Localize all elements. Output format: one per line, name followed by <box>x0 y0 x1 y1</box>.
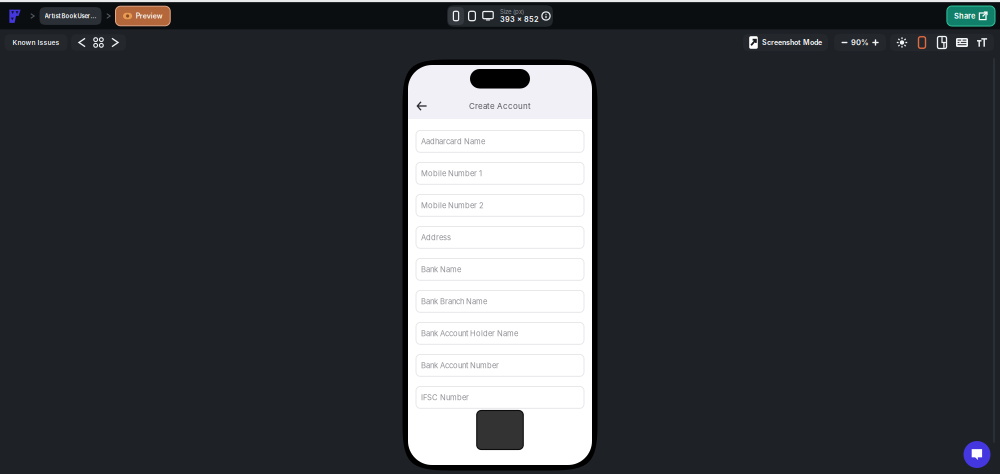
staticText: Address <box>421 233 451 242</box>
staticText: Size (px) <box>500 8 524 16</box>
button[interactable]: Zoom in <box>869 35 882 50</box>
staticText: Known Issues <box>12 38 59 47</box>
button[interactable]: Submit <box>477 410 523 449</box>
button[interactable]: Chat support <box>963 441 990 468</box>
staticText: IFSC Number <box>421 393 469 402</box>
staticText: Bank Name <box>421 265 461 274</box>
staticText: Share <box>954 11 975 20</box>
staticText: 393 × 852 <box>500 15 539 24</box>
button[interactable]: Zoom out <box>838 35 851 50</box>
button[interactable]: Next screen <box>107 35 123 50</box>
button[interactable]: Screenshot Mode <box>743 34 828 51</box>
button[interactable]: Aadharcard Name <box>416 130 584 152</box>
staticText: Bank Account Holder Name <box>421 329 518 338</box>
staticText: Artist Book User ... <box>44 12 96 20</box>
staticText: Screenshot Mode <box>762 38 822 47</box>
staticText: Mobile Number 2 <box>421 201 484 210</box>
button[interactable]: Phone size <box>448 7 464 25</box>
button[interactable]: IFSC Number <box>416 386 584 408</box>
button[interactable]: Tablet size <box>464 7 480 25</box>
button[interactable]: Bank Branch Name <box>416 290 584 312</box>
button[interactable]: Address <box>416 226 584 248</box>
button[interactable]: Keyboard <box>952 35 972 50</box>
button[interactable]: Bank Account Holder Name <box>416 322 584 344</box>
button[interactable]: Mobile Number 1 <box>416 162 584 184</box>
button[interactable]: Text size <box>972 35 992 50</box>
button[interactable]: Share <box>947 6 995 26</box>
button[interactable]: Info <box>540 8 552 24</box>
button[interactable]: Previous screen <box>74 35 90 50</box>
button[interactable]: All screens <box>90 35 107 50</box>
button[interactable]: Artist Book User ... <box>39 7 101 25</box>
button[interactable]: Known Issues <box>4 34 67 51</box>
staticText: Preview <box>136 12 163 20</box>
staticText: Create Account <box>469 101 531 111</box>
button[interactable]: Device frame <box>912 35 932 50</box>
button[interactable]: Bank Account Number <box>416 354 584 376</box>
button[interactable]: Mobile Number 2 <box>416 194 584 216</box>
button[interactable]: Home <box>4 5 25 27</box>
button[interactable]: Desktop size <box>480 7 496 25</box>
button[interactable]: Back <box>416 99 427 112</box>
staticText: Bank Account Number <box>421 361 499 370</box>
button[interactable]: Appearance <box>892 35 912 50</box>
button[interactable]: Bank Name <box>416 258 584 280</box>
staticText: Bank Branch Name <box>421 297 487 306</box>
staticText: 90% <box>851 38 869 47</box>
button[interactable]: Split view <box>932 35 952 50</box>
staticText: Aadharcard Name <box>421 137 485 146</box>
button[interactable]: Preview <box>115 6 170 26</box>
staticText: Mobile Number 1 <box>421 169 482 178</box>
